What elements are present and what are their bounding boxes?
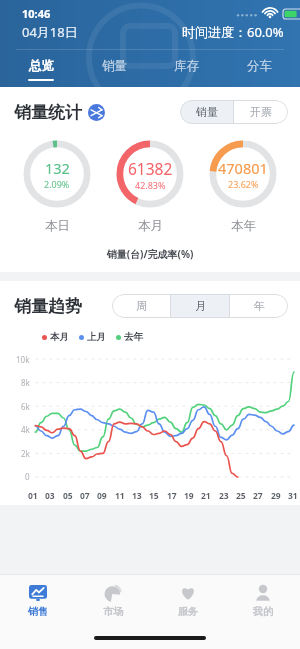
staticText: 07 <box>80 490 90 502</box>
staticText: 132 <box>45 158 70 178</box>
staticText: 61382 <box>128 158 173 179</box>
staticText: 03 <box>45 490 55 502</box>
staticText: 27 <box>253 490 263 502</box>
button[interactable]: 销量 <box>180 100 233 124</box>
staticText: 销量趋势 <box>14 296 82 317</box>
staticText: 本年 <box>231 218 256 234</box>
staticText: 月 <box>195 299 206 313</box>
button[interactable]: 服务 <box>150 575 225 627</box>
button[interactable]: 上月 <box>79 331 106 343</box>
button[interactable]: 年 <box>230 294 288 318</box>
staticText: 470801 <box>218 158 268 178</box>
staticText: 库存 <box>174 58 199 74</box>
button[interactable]: 本月 <box>42 331 69 343</box>
button[interactable]: 我的 <box>225 575 300 627</box>
staticText: 31 <box>288 490 298 502</box>
staticText: 销量 <box>196 105 218 119</box>
staticText: 6k <box>21 401 30 412</box>
staticText: 我的 <box>253 605 273 618</box>
staticText: 11 <box>115 490 125 502</box>
staticText: 本月 <box>138 218 163 234</box>
staticText: 分车 <box>247 58 272 74</box>
staticText: 销量(台)/完成率(%) <box>0 247 300 261</box>
staticText: 年 <box>254 299 265 313</box>
staticText: 15 <box>149 490 159 502</box>
staticText: 开票 <box>250 105 272 119</box>
staticText: 05 <box>63 490 73 502</box>
staticText: 0 <box>25 471 30 482</box>
button[interactable]: 周 <box>112 294 170 318</box>
button[interactable]: 总览 <box>10 55 72 84</box>
button[interactable]: 销售 <box>0 575 75 627</box>
staticText: 23 <box>219 490 229 502</box>
staticText: 上月 <box>87 331 106 343</box>
staticText: 本日 <box>45 218 70 234</box>
staticText: 19 <box>184 490 194 502</box>
staticText: 25 <box>236 490 246 502</box>
staticText: 销售 <box>28 605 48 618</box>
staticText: 销量统计 <box>14 102 82 123</box>
staticText: 周 <box>136 299 147 313</box>
staticText: 市场 <box>103 605 123 618</box>
staticText: 2k <box>21 448 30 459</box>
staticText: 时间进度：60.0% <box>182 23 284 41</box>
staticText: 42.83% <box>135 179 166 191</box>
staticText: 10:46 <box>22 6 51 21</box>
button[interactable]: 切换指标 <box>88 104 105 121</box>
staticText: 10k <box>16 354 30 365</box>
staticText: 17 <box>167 490 177 502</box>
staticText: 2.09% <box>44 178 70 190</box>
staticText: 去年 <box>124 331 143 343</box>
staticText: 4k <box>21 424 30 435</box>
staticText: 13 <box>132 490 142 502</box>
button[interactable]: 市场 <box>75 575 150 627</box>
button[interactable]: 库存 <box>155 55 217 84</box>
staticText: 服务 <box>178 605 198 618</box>
staticText: 销量 <box>102 58 127 74</box>
staticText: 21 <box>201 490 211 502</box>
staticText: 09 <box>97 490 107 502</box>
button[interactable]: 月 <box>171 294 229 318</box>
button[interactable]: 去年 <box>116 331 143 343</box>
staticText: 29 <box>271 490 281 502</box>
staticText: 01 <box>28 490 38 502</box>
button[interactable]: 分车 <box>228 55 290 84</box>
staticText: 23.62% <box>228 178 259 190</box>
button[interactable]: 销量 <box>83 55 145 84</box>
staticText: 本月 <box>50 331 69 343</box>
staticText: 总览 <box>29 58 54 74</box>
button[interactable]: 开票 <box>234 100 288 124</box>
staticText: 8k <box>21 377 30 388</box>
staticText: 04月18日 <box>22 23 78 41</box>
